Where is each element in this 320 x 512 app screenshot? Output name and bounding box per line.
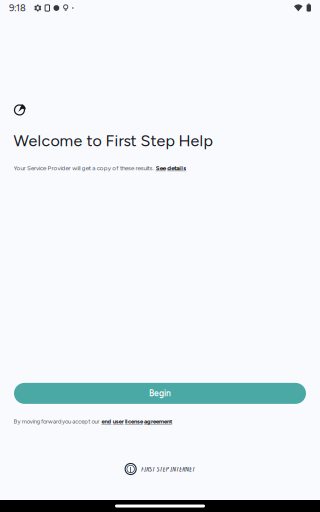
button[interactable]: See [156,164,186,172]
staticText: INTERNET [170,464,195,474]
staticText: See [156,164,166,172]
staticText: FIRST [141,464,155,474]
staticText: of [112,164,118,172]
staticText: STEP [157,464,169,474]
staticText: accept [72,418,90,425]
button[interactable]: Begin [14,383,306,404]
staticText: Provider [48,164,71,172]
staticText: end [101,418,111,425]
staticText: get [82,164,91,172]
staticText: our [91,418,99,425]
staticText: moving [22,418,40,425]
staticText: Service [27,164,46,172]
staticText: 9:18 [9,2,26,14]
staticText: will [72,164,80,172]
staticText: copy [97,164,111,172]
staticText: these [120,164,134,172]
staticText: license [125,418,143,425]
staticText: By [13,418,20,425]
staticText: Welcome to First Step Help [13,131,212,150]
staticText: forward [41,418,61,425]
staticText: a [92,164,95,172]
staticText: user [113,418,124,425]
staticText: agreement [144,418,172,425]
button[interactable]: end [101,418,172,425]
staticText: Begin [149,388,171,398]
staticText: results. [135,164,153,172]
staticText: details [167,164,186,172]
staticText: Your [13,164,25,172]
staticText: you [62,418,71,425]
